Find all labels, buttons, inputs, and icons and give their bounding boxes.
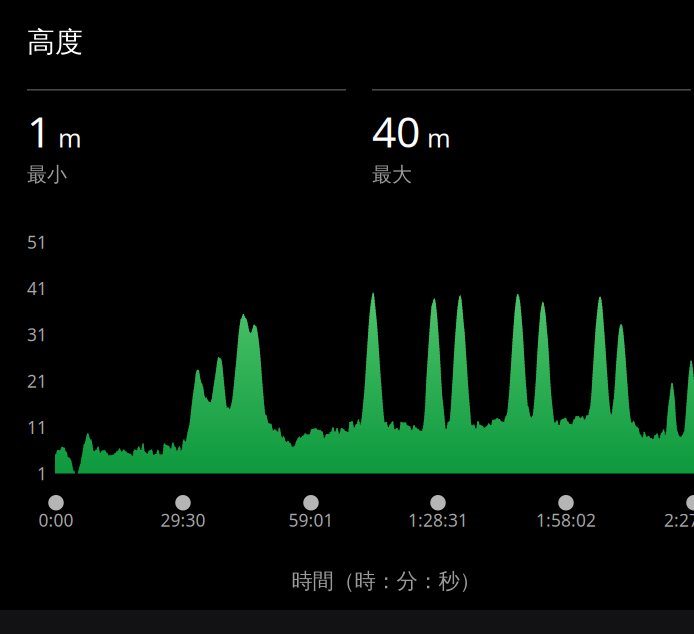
staticText: 1	[27, 103, 51, 159]
staticText: 1	[37, 462, 47, 485]
staticText: 31	[27, 323, 47, 346]
staticText: 最小	[27, 162, 67, 187]
staticText: 0:00	[38, 508, 73, 531]
staticText: m	[427, 121, 451, 154]
staticText: 51	[27, 230, 47, 253]
staticText: 1:28:31	[408, 508, 468, 531]
staticText: 2:27:32	[664, 508, 694, 531]
staticText: 21	[27, 369, 47, 392]
staticText: m	[58, 121, 82, 154]
staticText: 時間（時：分：秒）	[291, 568, 480, 594]
staticText: 41	[27, 277, 47, 300]
staticText: 1:58:02	[536, 508, 596, 531]
staticText: 11	[27, 416, 47, 439]
staticText: 59:01	[288, 508, 333, 531]
staticText: 最大	[372, 162, 412, 187]
staticText: 29:30	[160, 508, 205, 531]
staticText: 高度	[27, 25, 83, 59]
staticText: 40	[372, 103, 420, 159]
